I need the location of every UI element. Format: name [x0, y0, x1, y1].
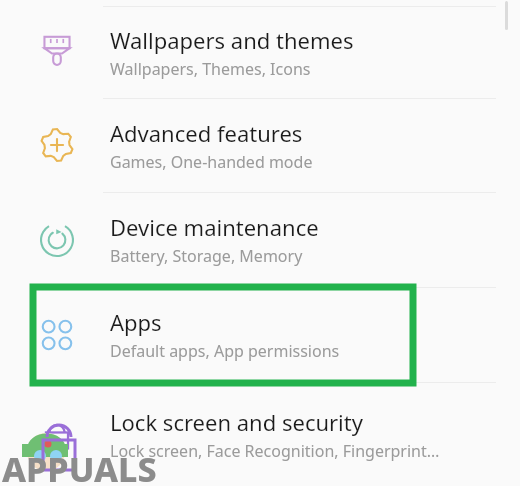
staticText: Device maintenance: [110, 212, 319, 242]
button[interactable]: Lock screen and security: [0, 382, 520, 486]
button[interactable]: Apps: [0, 287, 520, 382]
staticText: Advanced features: [110, 118, 303, 148]
staticText: Lock screen and security: [110, 407, 363, 437]
staticText: APPUALS: [2, 446, 157, 486]
staticText: Apps: [110, 307, 162, 337]
staticText: Battery, Storage, Memory: [110, 245, 303, 267]
staticText: Default apps, App permissions: [110, 340, 340, 362]
staticText: Wallpapers and themes: [110, 25, 354, 55]
other: Apps highlighted: [0, 0, 520, 486]
staticText: Games, One-handed mode: [110, 151, 313, 173]
button[interactable]: Wallpapers and themes: [0, 6, 520, 98]
button[interactable]: Device maintenance: [0, 192, 520, 287]
staticText: Wallpapers, Themes, Icons: [110, 58, 311, 80]
button[interactable]: Advanced features: [0, 98, 520, 192]
staticText: Lock screen, Face Recognition, Fingerpri…: [110, 440, 440, 462]
